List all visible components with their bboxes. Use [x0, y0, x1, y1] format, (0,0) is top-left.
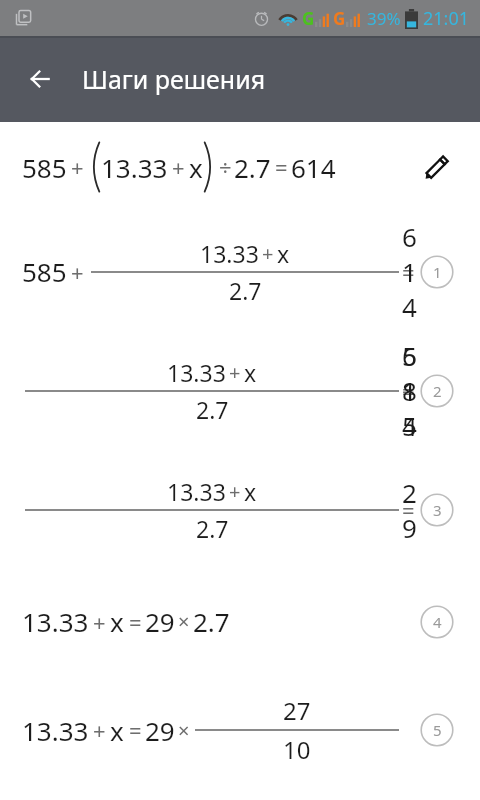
- button[interactable]: 585: [0, 212, 480, 331]
- staticText: 13.33: [22, 604, 89, 639]
- staticText: 27: [283, 694, 311, 727]
- staticText: +: [172, 152, 185, 182]
- staticText: 585: [22, 150, 67, 185]
- staticText: 2.7: [234, 150, 271, 185]
- staticText: 4: [433, 612, 442, 632]
- staticText: +: [262, 240, 274, 267]
- staticText: =: [275, 152, 288, 182]
- button[interactable]: 13.33: [0, 569, 480, 674]
- staticText: 585: [22, 254, 67, 289]
- staticText: =: [129, 715, 142, 745]
- button[interactable]: 3: [420, 493, 454, 527]
- staticText: +: [71, 257, 84, 287]
- staticText: 2: [433, 381, 442, 401]
- staticText: +: [93, 607, 106, 637]
- staticText: ×: [178, 608, 190, 635]
- staticText: +: [93, 715, 106, 745]
- staticText: 29: [145, 713, 175, 748]
- staticText: 13.33: [167, 476, 226, 507]
- staticText: 614: [291, 150, 336, 185]
- staticText: 21:01: [423, 6, 470, 31]
- staticText: G: [333, 7, 346, 30]
- staticText: 2.7: [229, 275, 262, 306]
- staticText: 13.33: [167, 357, 226, 388]
- staticText: 13.33: [101, 150, 168, 185]
- button[interactable]: 13.33: [0, 331, 480, 450]
- staticText: x: [244, 357, 257, 388]
- button[interactable]: 1: [420, 255, 454, 289]
- staticText: 5: [433, 720, 442, 740]
- button[interactable]: 585: [0, 122, 480, 212]
- staticText: x: [244, 476, 257, 507]
- staticText: G: [302, 7, 315, 30]
- button[interactable]: Back: [18, 57, 62, 101]
- staticText: 10: [283, 733, 311, 766]
- staticText: 2.7: [196, 513, 229, 544]
- staticText: 39%: [367, 7, 401, 30]
- staticText: 1: [433, 262, 442, 282]
- staticText: x: [110, 604, 124, 639]
- staticText: ×: [178, 717, 190, 744]
- staticText: 13.33: [22, 713, 89, 748]
- staticText: +: [71, 152, 84, 182]
- staticText: x: [189, 150, 203, 185]
- button[interactable]: 2: [420, 374, 454, 408]
- button[interactable]: 13.33: [0, 450, 480, 569]
- staticText: =: [129, 607, 142, 637]
- staticText: 2.7: [196, 394, 229, 425]
- staticText: x: [277, 238, 290, 269]
- staticText: x: [110, 713, 124, 748]
- button[interactable]: 5: [420, 713, 454, 747]
- button[interactable]: 13.33: [0, 674, 480, 786]
- staticText: ÷: [219, 152, 232, 182]
- staticText: 2.7: [193, 604, 230, 639]
- staticText: +: [229, 478, 241, 505]
- staticText: +: [229, 359, 241, 386]
- staticText: Шаги решения: [82, 62, 266, 96]
- staticText: 29: [145, 604, 175, 639]
- button[interactable]: 4: [420, 605, 454, 639]
- staticText: 13.33: [200, 238, 259, 269]
- button[interactable]: Edit equation: [417, 147, 457, 187]
- staticText: 3: [433, 500, 442, 520]
